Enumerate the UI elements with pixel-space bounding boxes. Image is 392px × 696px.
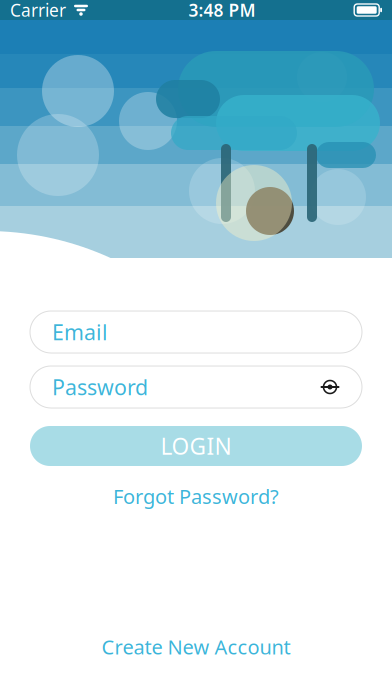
staticText: Password: [52, 373, 148, 401]
button[interactable]: Email: [30, 311, 362, 353]
button[interactable]: Password: [30, 366, 362, 408]
button[interactable]: LOGIN: [30, 426, 362, 466]
staticText: Email: [52, 318, 108, 346]
button[interactable]: Create New Account: [85, 623, 306, 670]
staticText: 3:48 PM: [189, 0, 256, 21]
staticText: LOGIN: [160, 431, 231, 461]
button[interactable]: Forgot Password?: [99, 475, 293, 518]
staticText: Forgot Password?: [113, 483, 279, 510]
staticText: Carrier: [10, 0, 66, 21]
staticText: Create New Account: [101, 633, 290, 660]
